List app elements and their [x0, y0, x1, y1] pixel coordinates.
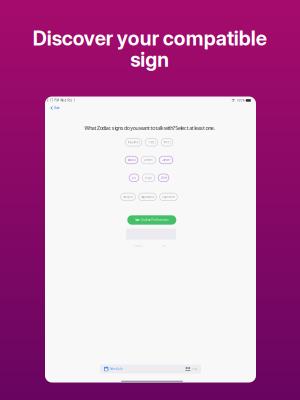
staticText: Pisces	[147, 140, 155, 144]
staticText: Discover your compatible sign	[32, 26, 266, 71]
staticText: Aquarius	[127, 140, 139, 144]
staticText: Scorpio	[123, 195, 133, 199]
staticText: 100%	[237, 99, 245, 102]
staticText: Schedule	[110, 367, 123, 371]
button[interactable]: Taurus	[125, 156, 138, 164]
staticText: Cancel	[134, 244, 143, 248]
button[interactable]: Gemini	[141, 156, 156, 164]
staticText: Back	[54, 106, 59, 110]
staticText: Gemini	[143, 158, 153, 162]
button[interactable]: Pisces	[145, 138, 158, 146]
staticText: Aries	[163, 140, 170, 144]
staticText: Sagittarius	[141, 195, 154, 199]
button[interactable]: Libra	[158, 174, 169, 182]
button[interactable]: OK	[162, 244, 166, 248]
button[interactable]: Participants	[185, 367, 201, 371]
staticText: Virgo	[144, 176, 152, 179]
button[interactable]: Aquarius	[125, 138, 142, 146]
staticText: OK	[162, 244, 166, 248]
staticText: Capricorn	[162, 195, 175, 199]
staticText: What Zodiac signs do you want to talk wi…	[84, 124, 214, 132]
button[interactable]: Scorpio	[121, 193, 135, 201]
staticText: 3:17 PM Wed Feb 1	[46, 99, 75, 102]
button[interactable]: Leo	[129, 174, 139, 182]
button[interactable]: Schedule	[100, 367, 123, 371]
button[interactable]: Sagittarius	[139, 193, 156, 201]
staticText: Cancer	[161, 158, 170, 162]
staticText: Leo	[131, 176, 136, 179]
staticText: Taurus	[127, 158, 135, 162]
button[interactable]: Save Zodiac Preferences	[127, 215, 176, 225]
button[interactable]: Aries	[161, 138, 173, 146]
button[interactable]: Back	[49, 104, 60, 111]
staticText: Libra	[160, 176, 166, 179]
button[interactable]: Capricorn	[160, 193, 177, 201]
staticText: 1/4	[192, 367, 197, 371]
button[interactable]: Virgo	[142, 174, 155, 182]
staticText: Save Zodiac Preferences	[135, 218, 168, 222]
button[interactable]: Cancer	[159, 156, 173, 164]
button[interactable]: Cancel	[134, 244, 143, 248]
